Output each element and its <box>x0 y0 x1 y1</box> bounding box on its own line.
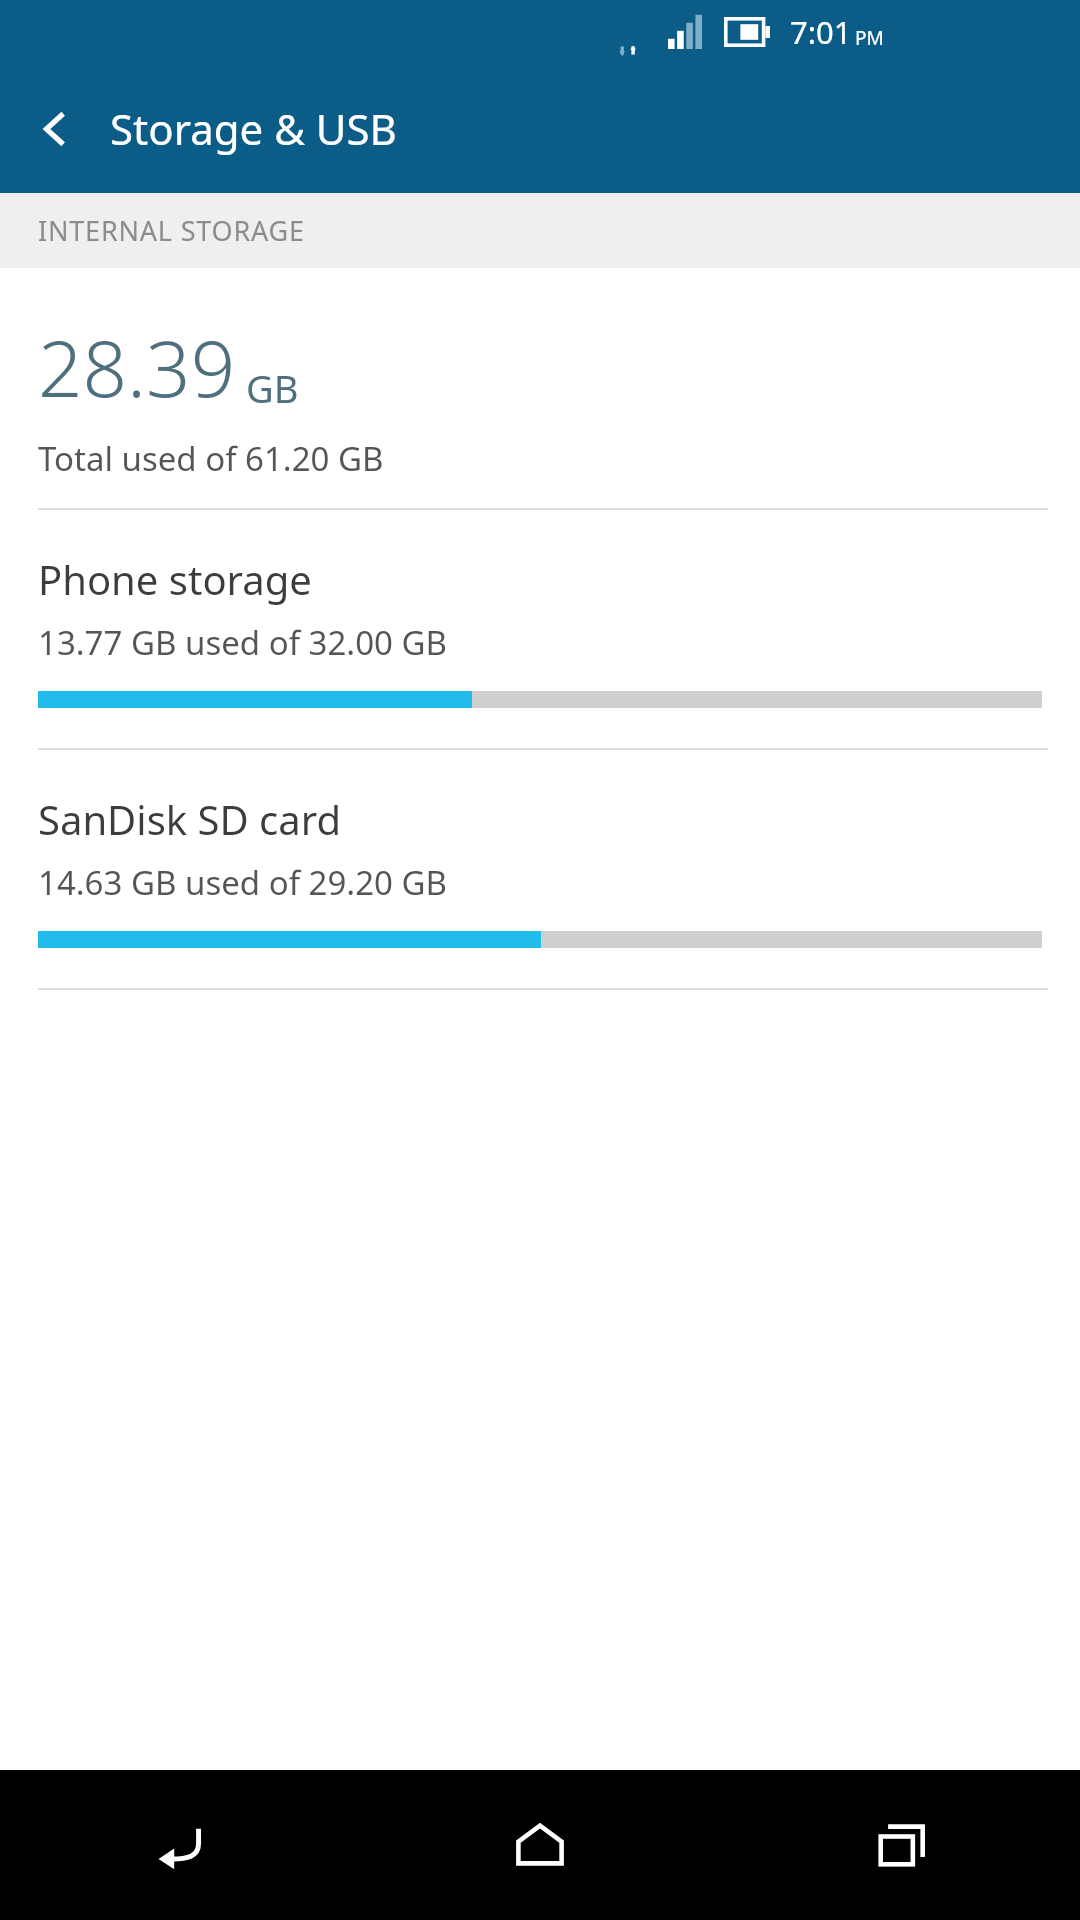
button[interactable]: Home <box>360 1770 720 1920</box>
button[interactable]: Phone storage <box>0 510 1080 748</box>
staticText: 13.77 GB used of 32.00 GB <box>38 620 447 665</box>
staticText: PM <box>855 25 884 51</box>
staticText: GB <box>246 362 299 414</box>
staticText: SanDisk SD card <box>38 792 342 846</box>
button[interactable]: Back <box>20 93 92 165</box>
staticText: Phone storage <box>38 552 312 606</box>
staticText: 28.39 <box>38 314 236 420</box>
staticText: 14.63 GB used of 29.20 GB <box>38 860 447 905</box>
staticText: Total used of 61.20 GB <box>38 436 384 481</box>
button[interactable]: SanDisk SD card <box>0 750 1080 988</box>
button[interactable]: Back <box>0 1770 360 1920</box>
staticText: INTERNAL STORAGE <box>38 212 305 249</box>
staticText: 7:01 <box>790 11 852 53</box>
staticText: Storage & USB <box>110 100 397 157</box>
button[interactable]: Recent apps <box>720 1770 1080 1920</box>
